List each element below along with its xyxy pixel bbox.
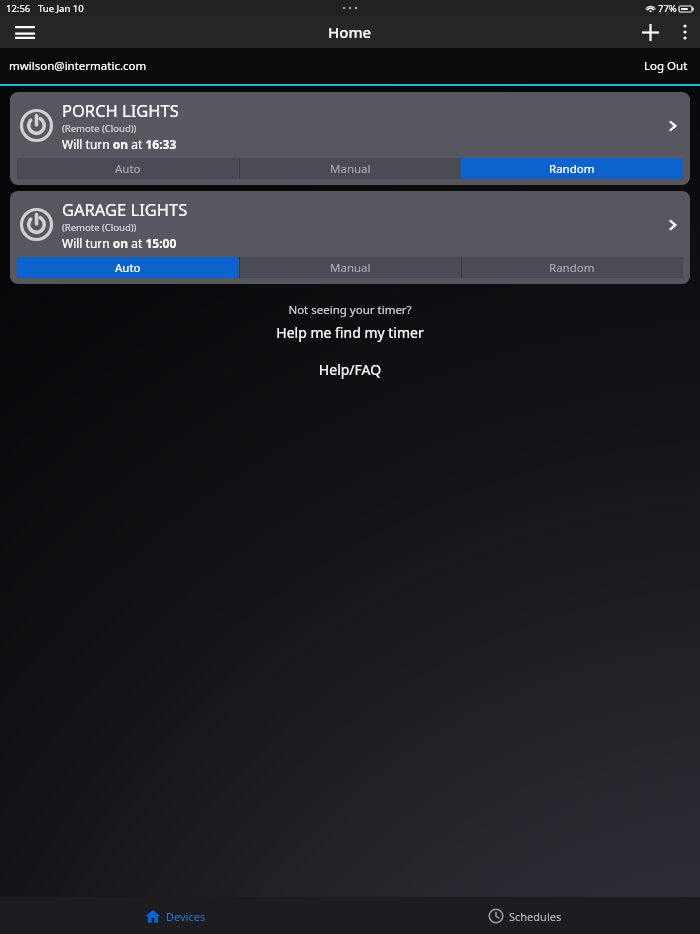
staticText: Log Out (644, 58, 688, 74)
button[interactable]: Open navigation menu (0, 16, 50, 48)
staticText: Tue Jan 10 (38, 2, 84, 15)
button[interactable]: Auto (17, 257, 239, 278)
staticText: mwilson@intermatic.com (9, 58, 147, 74)
button[interactable]: More options (670, 16, 700, 48)
button[interactable]: Log Out (641, 54, 691, 78)
staticText: Not seeing your timer? (0, 302, 700, 318)
staticText: Help me find my timer (0, 323, 700, 342)
staticText: (Remote (Cloud)) (62, 122, 137, 135)
button[interactable]: Manual (239, 158, 461, 179)
staticText: Auto (115, 161, 141, 177)
button[interactable]: Help me find my timer (0, 323, 700, 342)
staticText: GARAGE LIGHTS (62, 198, 188, 220)
staticText: Manual (330, 161, 371, 177)
staticText: Will turn on at 16:33 (62, 136, 177, 152)
staticText: 77% (658, 2, 677, 15)
staticText: Auto (115, 260, 141, 276)
button[interactable]: Schedules (350, 897, 700, 934)
staticText: 12:56 (6, 2, 31, 15)
staticText: Will turn on at 15:00 (62, 235, 177, 251)
button[interactable]: Help/FAQ (0, 360, 700, 379)
staticText: Random (549, 260, 595, 276)
button[interactable]: GARAGE LIGHTS (10, 191, 690, 251)
staticText: Schedules (509, 909, 562, 924)
button[interactable]: Add device (630, 16, 670, 48)
button[interactable]: Auto (17, 158, 239, 179)
staticText: Help/FAQ (0, 360, 700, 379)
staticText: (Remote (Cloud)) (62, 221, 137, 234)
button[interactable]: Random (461, 257, 683, 278)
button[interactable]: Devices (0, 897, 350, 934)
staticText: Random (549, 161, 595, 177)
button[interactable]: Random (461, 158, 683, 179)
staticText: Devices (166, 909, 206, 924)
button[interactable]: PORCH LIGHTS (10, 92, 690, 152)
staticText: Home (328, 22, 372, 42)
button[interactable]: Manual (239, 257, 461, 278)
staticText: Manual (330, 260, 371, 276)
staticText: PORCH LIGHTS (62, 99, 179, 121)
